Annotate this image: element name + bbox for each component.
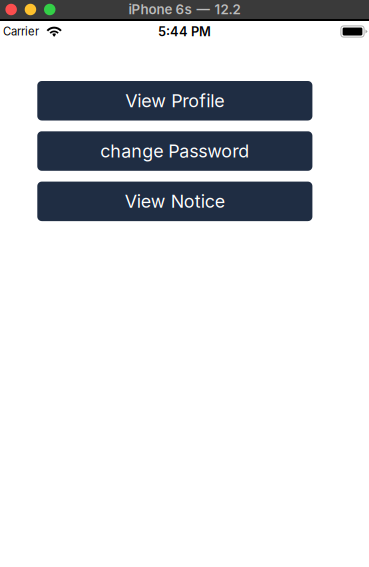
button[interactable]: Zoom xyxy=(44,4,55,15)
staticText: 5:44 PM xyxy=(158,24,211,39)
staticText: View Notice xyxy=(125,190,225,212)
staticText: change Password xyxy=(100,140,249,162)
staticText: Carrier xyxy=(3,25,39,38)
staticText: iPhone 6s — 12.2 xyxy=(128,1,240,17)
button[interactable]: change Password xyxy=(37,131,312,171)
staticText: View Profile xyxy=(125,90,224,111)
button[interactable]: Minimize xyxy=(25,4,36,15)
button[interactable]: View Profile xyxy=(37,81,312,120)
button[interactable]: View Notice xyxy=(37,182,312,221)
button[interactable]: Close xyxy=(5,4,17,15)
